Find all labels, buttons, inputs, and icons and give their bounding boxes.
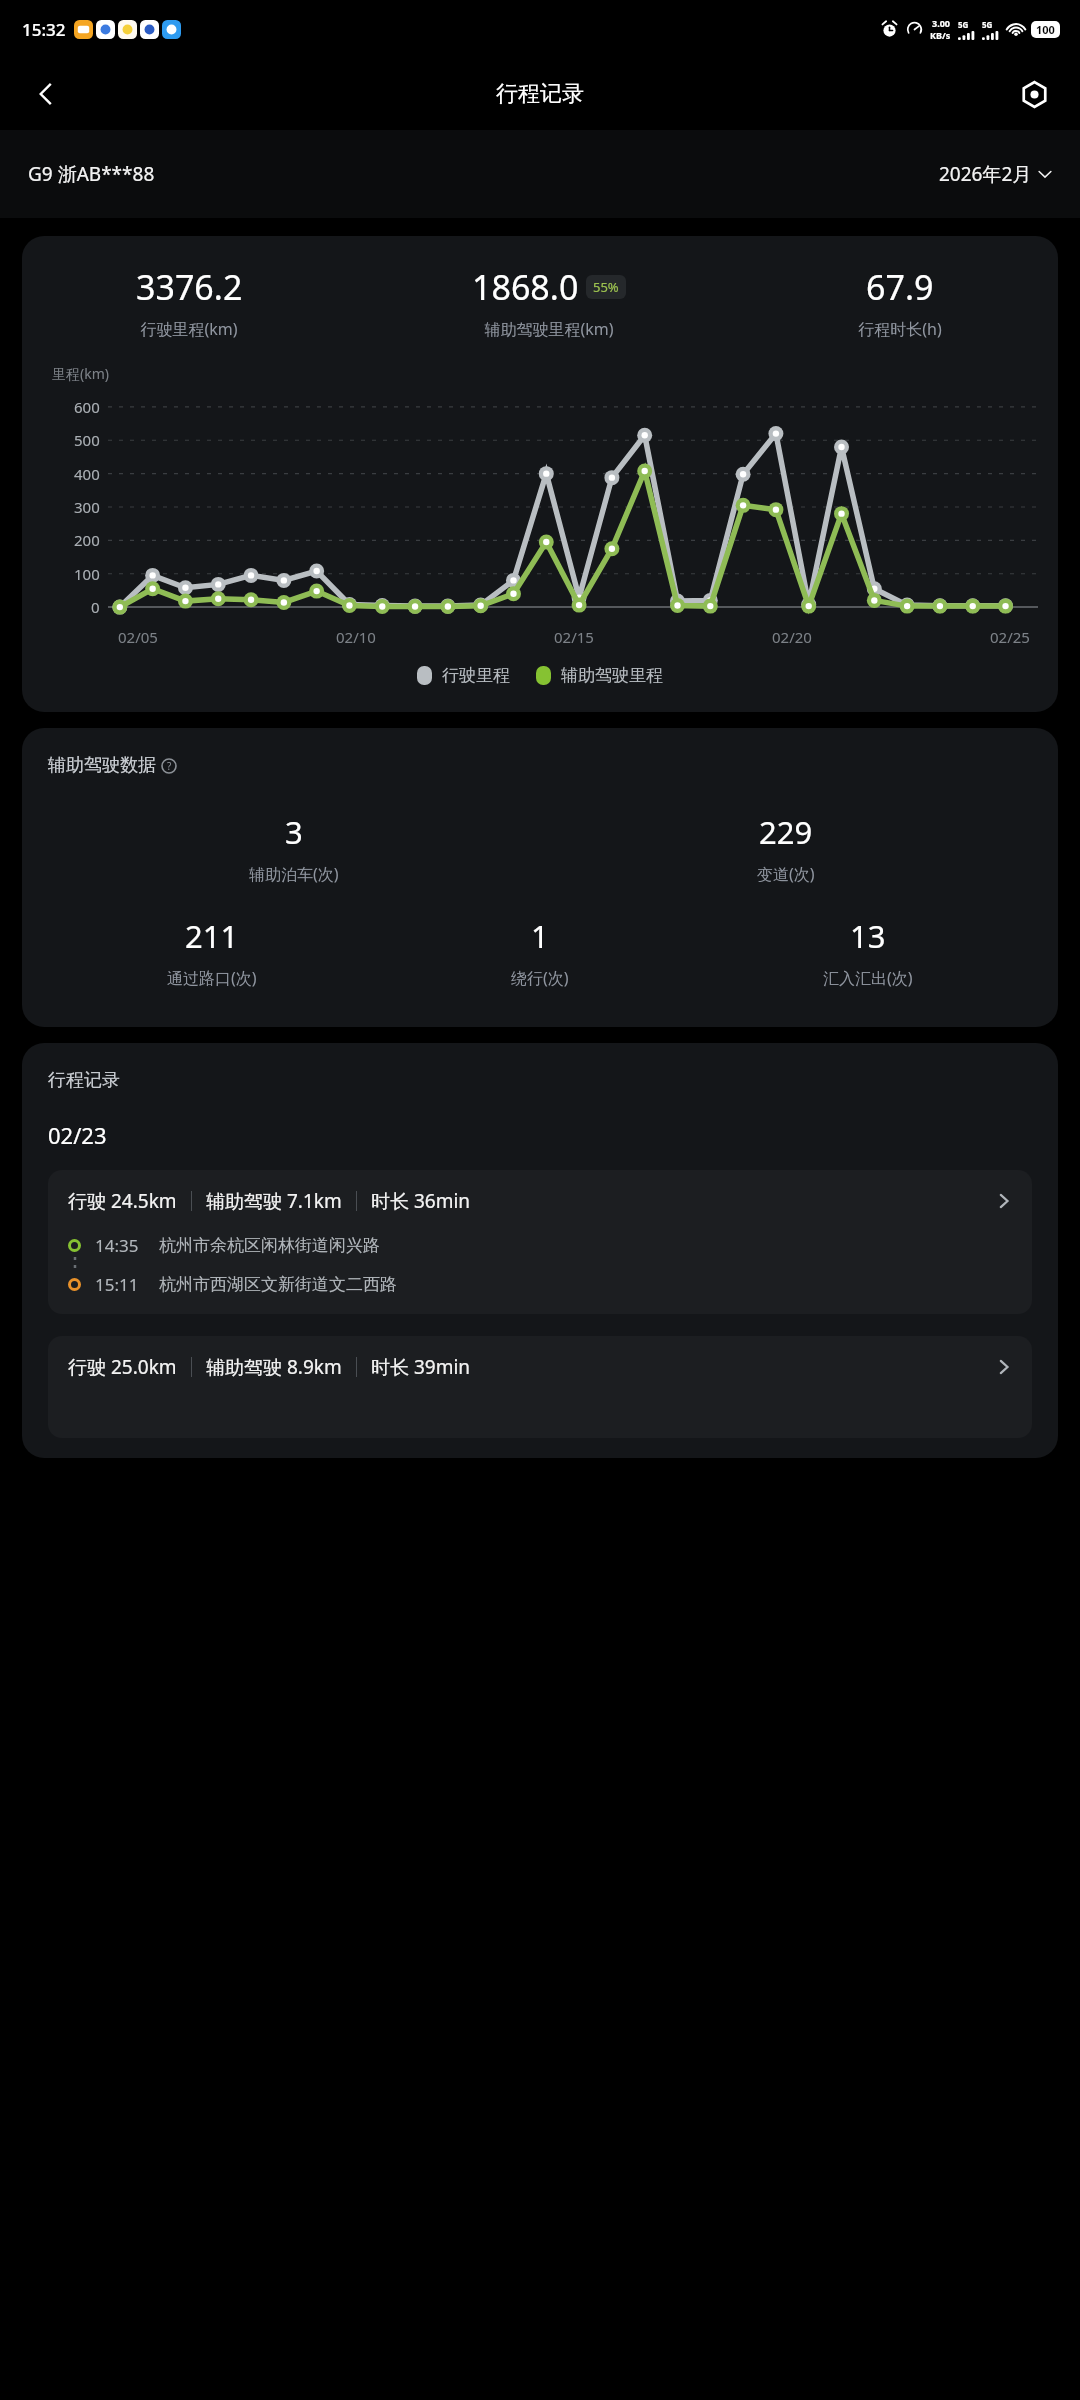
- staticText: 辅助泊车(次): [249, 863, 339, 885]
- staticText: 02/20: [772, 627, 812, 647]
- staticText: 600: [74, 397, 100, 417]
- staticText: 02/23: [48, 1120, 107, 1150]
- staticText: 300: [74, 497, 100, 517]
- staticText: 5G: [958, 19, 969, 30]
- staticText: 变道(次): [757, 863, 815, 885]
- button[interactable]: 行驶 24.5km: [48, 1170, 1032, 1314]
- button[interactable]: Back: [22, 70, 70, 118]
- staticText: 1868.0: [472, 264, 579, 310]
- staticText: 行驶 24.5km: [68, 1188, 177, 1214]
- staticText: 辅助驾驶 7.1km: [206, 1188, 342, 1214]
- staticText: 13: [850, 915, 886, 957]
- staticText: 15:11: [95, 1273, 139, 1296]
- button[interactable]: 2026年2月: [939, 161, 1052, 187]
- staticText: 02/25: [990, 627, 1030, 647]
- staticText: 229: [759, 811, 813, 853]
- staticText: 15:32: [22, 18, 66, 41]
- staticText: 200: [74, 530, 100, 550]
- staticText: 400: [74, 464, 100, 484]
- staticText: 行驶里程: [442, 665, 510, 686]
- staticText: 3: [285, 811, 303, 853]
- staticText: 行驶里程(km): [140, 318, 238, 340]
- staticText: 行程记录: [48, 1069, 120, 1092]
- staticText: 500: [74, 430, 100, 450]
- staticText: 0: [91, 597, 100, 617]
- staticText: 汇入汇出(次): [823, 967, 913, 989]
- staticText: 辅助驾驶 8.9km: [206, 1354, 342, 1380]
- button[interactable]: 行驶 25.0km: [48, 1336, 1032, 1438]
- staticText: 14:35: [95, 1234, 139, 1257]
- staticText: 1: [531, 915, 549, 957]
- staticText: 2026年2月: [939, 161, 1032, 187]
- staticText: 55%: [593, 278, 619, 296]
- staticText: KB/s: [930, 29, 951, 41]
- staticText: 3.00: [932, 17, 950, 29]
- staticText: 67.9: [866, 264, 934, 310]
- button[interactable]: Settings: [1010, 70, 1058, 118]
- staticText: 时长 36min: [371, 1188, 471, 1214]
- staticText: 时长 39min: [371, 1354, 471, 1380]
- staticText: G9 浙AB***88: [28, 161, 155, 187]
- staticText: 100: [1036, 22, 1055, 37]
- staticText: 100: [74, 564, 100, 584]
- staticText: 杭州市余杭区闲林街道闲兴路: [159, 1235, 380, 1256]
- staticText: 02/15: [554, 627, 594, 647]
- staticText: 02/05: [118, 627, 158, 647]
- staticText: 杭州市西湖区文新街道文二西路: [159, 1274, 397, 1295]
- button[interactable]: Help: [159, 756, 179, 776]
- staticText: 辅助驾驶数据: [48, 754, 156, 777]
- staticText: 211: [185, 915, 239, 957]
- staticText: 辅助驾驶里程: [561, 665, 663, 686]
- staticText: 行程时长(h): [858, 318, 942, 340]
- staticText: 通过路口(次): [167, 967, 257, 989]
- staticText: 绕行(次): [511, 967, 569, 989]
- staticText: 行程记录: [496, 80, 584, 108]
- staticText: 辅助驾驶里程(km): [484, 318, 614, 340]
- staticText: 02/10: [336, 627, 376, 647]
- staticText: ?: [167, 759, 172, 773]
- staticText: 行驶 25.0km: [68, 1354, 177, 1380]
- staticText: 里程(km): [52, 364, 109, 383]
- staticText: 5G: [982, 19, 993, 30]
- staticText: 3376.2: [136, 264, 243, 310]
